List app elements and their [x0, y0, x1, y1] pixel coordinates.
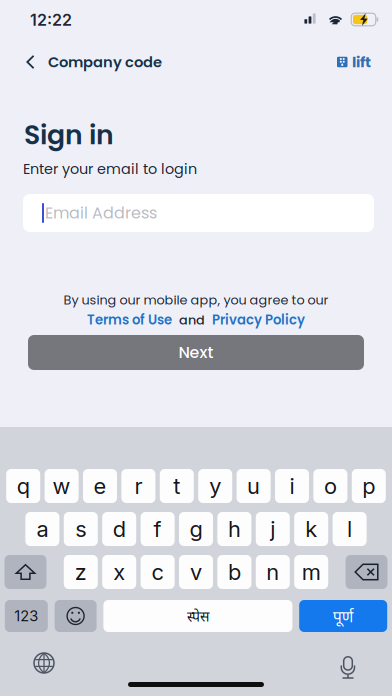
button[interactable]: t: [160, 469, 194, 503]
button[interactable]: 123: [5, 600, 48, 632]
button[interactable]: s: [64, 512, 98, 546]
staticText: y: [209, 473, 221, 499]
staticText: x: [113, 559, 125, 585]
staticText: v: [190, 559, 202, 585]
button[interactable]: d: [102, 512, 136, 546]
button[interactable]: z: [64, 555, 98, 589]
button[interactable]: r: [121, 469, 155, 503]
staticText: Enter your email to login: [23, 159, 197, 179]
staticText: p: [362, 473, 375, 499]
button[interactable]: x: [102, 555, 136, 589]
staticText: f: [154, 516, 162, 542]
button[interactable]: Email Address: [23, 194, 374, 232]
staticText: d: [113, 516, 126, 542]
staticText: 12:22: [30, 10, 72, 30]
button[interactable]: lift: [337, 52, 387, 72]
staticText: Privacy Policy: [212, 311, 305, 329]
staticText: h: [228, 516, 241, 542]
button[interactable]: j: [256, 512, 290, 546]
staticText: and: [179, 311, 205, 329]
button[interactable]: पूर्ण: [299, 600, 387, 632]
button[interactable]: i: [275, 469, 309, 503]
button[interactable]: q: [6, 469, 40, 503]
button[interactable]: f: [141, 512, 175, 546]
staticText: l: [347, 516, 352, 542]
staticText: r: [134, 473, 142, 499]
staticText: t: [173, 473, 180, 499]
button[interactable]: m: [294, 555, 328, 589]
button[interactable]: Privacy Policy: [212, 311, 305, 329]
staticText: lift: [352, 52, 371, 72]
button[interactable]: Dictate: [326, 651, 370, 675]
staticText: b: [228, 559, 241, 585]
staticText: Company code: [48, 52, 162, 72]
button[interactable]: Next keyboard: [22, 651, 66, 675]
staticText: a: [36, 516, 48, 542]
button[interactable]: k: [294, 512, 328, 546]
staticText: e: [93, 473, 106, 499]
button[interactable]: y: [198, 469, 232, 503]
button[interactable]: p: [352, 469, 386, 503]
staticText: j: [270, 516, 275, 542]
button[interactable]: a: [25, 512, 59, 546]
button[interactable]: Next: [28, 335, 364, 370]
button[interactable]: u: [237, 469, 271, 503]
staticText: g: [189, 516, 202, 542]
staticText: n: [266, 559, 279, 585]
button[interactable]: n: [256, 555, 290, 589]
staticText: s: [75, 516, 86, 542]
button[interactable]: Shift: [4, 555, 46, 589]
staticText: q: [17, 473, 30, 499]
button[interactable]: स्पेस: [103, 600, 292, 632]
button[interactable]: c: [141, 555, 175, 589]
staticText: 123: [14, 607, 38, 625]
button[interactable]: Emoji: [55, 600, 97, 632]
button[interactable]: l: [333, 512, 367, 546]
button[interactable]: b: [217, 555, 251, 589]
button[interactable]: v: [179, 555, 213, 589]
button[interactable]: Terms of Use: [87, 311, 172, 329]
staticText: स्पेस: [187, 606, 209, 626]
staticText: Next: [178, 341, 213, 364]
staticText: Sign in: [24, 116, 114, 154]
staticText: o: [324, 473, 337, 499]
button[interactable]: o: [313, 469, 347, 503]
staticText: c: [152, 559, 164, 585]
staticText: w: [53, 473, 71, 499]
staticText: u: [247, 473, 260, 499]
staticText: पूर्ण: [333, 605, 354, 627]
staticText: i: [289, 473, 294, 499]
button[interactable]: g: [179, 512, 213, 546]
button[interactable]: Company code: [26, 52, 226, 72]
staticText: z: [75, 559, 87, 585]
staticText: Email Address: [45, 202, 157, 224]
staticText: k: [305, 516, 317, 542]
staticText: Terms of Use: [87, 311, 172, 329]
staticText: By using our mobile app, you agree to ou…: [63, 291, 328, 309]
button[interactable]: Delete: [345, 555, 387, 589]
button[interactable]: h: [217, 512, 251, 546]
button[interactable]: w: [45, 469, 79, 503]
button[interactable]: e: [83, 469, 117, 503]
staticText: m: [302, 559, 321, 585]
